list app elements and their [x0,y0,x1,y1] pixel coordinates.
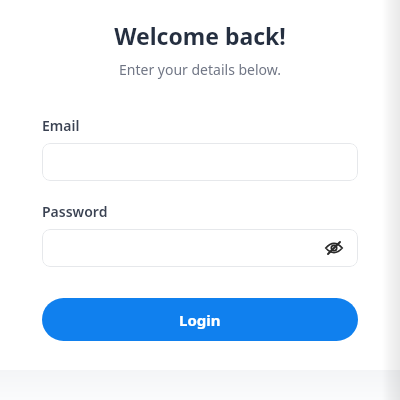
staticText: Enter your details below. [0,60,400,79]
button[interactable]: Login [42,298,358,341]
button[interactable]: Email input field [42,143,358,181]
button[interactable]: Password input field [42,229,358,267]
staticText: Login [179,310,221,330]
staticText: Password [42,202,108,221]
button[interactable]: Show password [322,236,346,260]
staticText: Welcome back! [0,20,400,51]
staticText: Email [42,116,80,135]
